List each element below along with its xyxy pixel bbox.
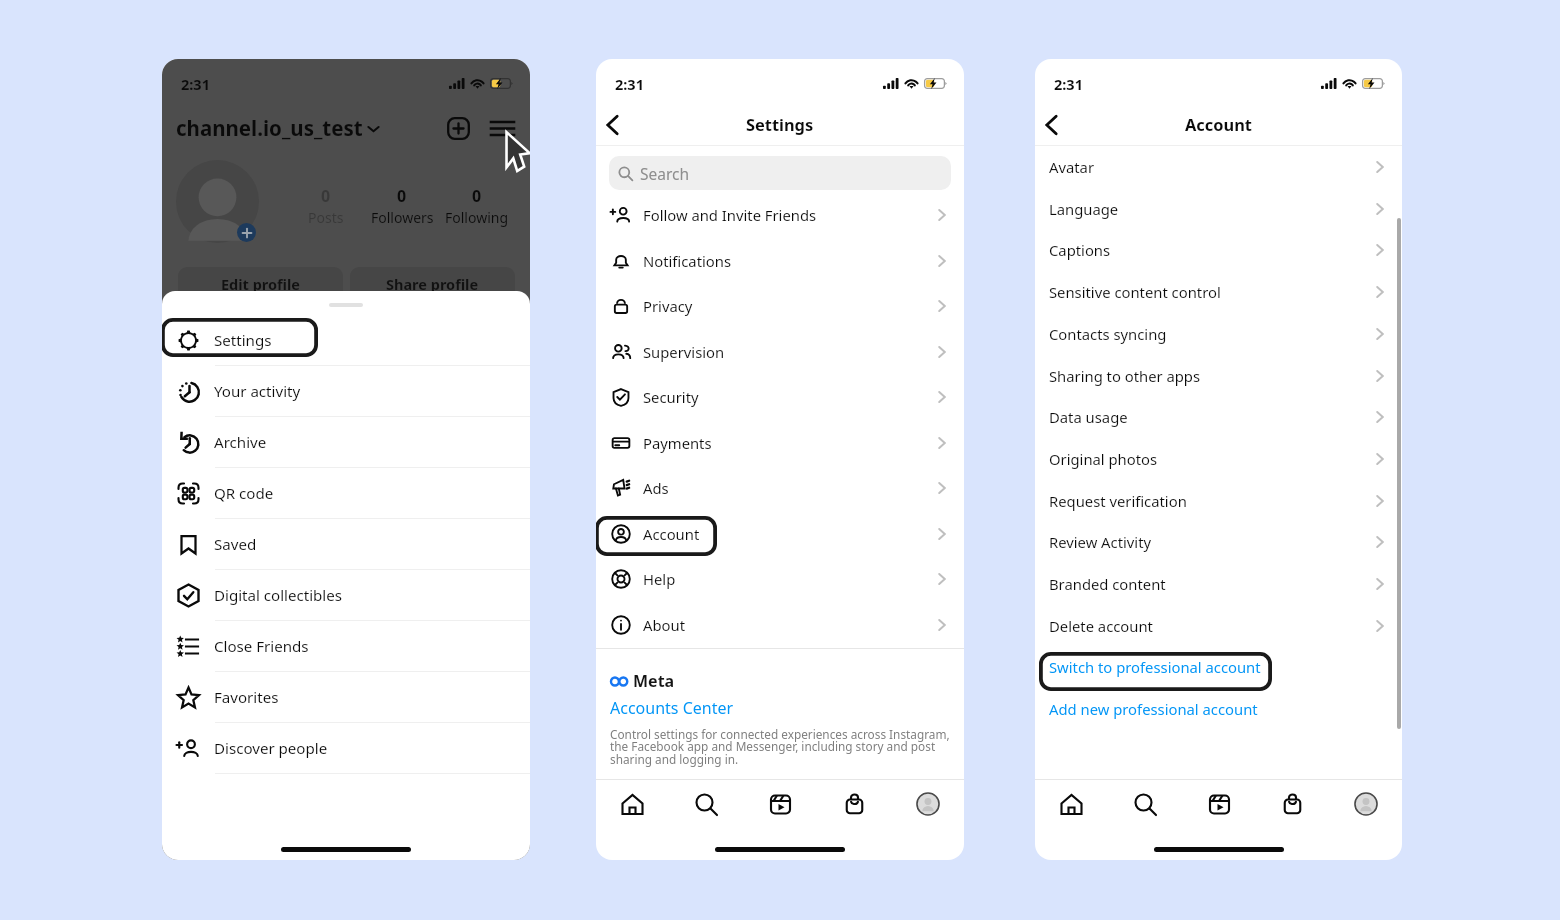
staticText: Edit profile <box>221 274 301 294</box>
staticText: Review Activity <box>1049 532 1152 552</box>
staticText: Request verification <box>1049 491 1187 511</box>
button[interactable]: Search <box>609 156 951 190</box>
staticText: Follow and Invite Friends <box>643 205 817 225</box>
button[interactable]: 0 <box>276 185 376 227</box>
button[interactable]: Branded content <box>1049 563 1388 605</box>
button[interactable]: Supervision <box>610 329 950 375</box>
button[interactable]: About <box>610 602 950 648</box>
button[interactable]: Security <box>610 374 950 420</box>
button[interactable]: Switch to professional account <box>1049 646 1402 688</box>
staticText: Digital collectibles <box>214 585 343 606</box>
staticText: Add new professional account <box>1049 699 1258 719</box>
staticText: Settings <box>214 330 272 351</box>
button[interactable]: QR code <box>162 468 530 519</box>
button[interactable]: Avatar <box>1049 146 1388 188</box>
button[interactable]: Saved <box>162 519 530 570</box>
button[interactable]: Ads <box>610 465 950 511</box>
button[interactable]: Account <box>610 511 950 557</box>
button[interactable]: Search <box>1130 789 1160 819</box>
staticText: Avatar <box>1049 157 1095 177</box>
staticText: channel.io_us_test <box>176 114 363 142</box>
button[interactable]: Back <box>1035 109 1067 141</box>
button[interactable]: Accounts Center <box>596 697 964 719</box>
staticText: Sensitive content control <box>1049 282 1221 302</box>
button[interactable]: Follow and Invite Friends <box>610 192 950 238</box>
button[interactable]: Delete account <box>1049 605 1388 647</box>
button[interactable]: Back <box>596 109 628 141</box>
button[interactable]: New post <box>444 114 472 142</box>
staticText: 0 <box>472 185 482 207</box>
button[interactable]: Shop <box>839 789 869 819</box>
button[interactable]: 0 <box>352 185 452 227</box>
staticText: 2:31 <box>615 74 644 94</box>
staticText: Account <box>643 524 700 544</box>
button[interactable]: Payments <box>610 420 950 466</box>
staticText: Language <box>1049 199 1119 219</box>
button[interactable]: Edit profile <box>178 267 343 300</box>
button[interactable]: Add new professional account <box>1049 688 1402 730</box>
button[interactable]: Captions <box>1049 229 1388 271</box>
button[interactable]: Data usage <box>1049 396 1388 438</box>
staticText: 2:31 <box>181 74 210 94</box>
button[interactable]: Sensitive content control <box>1049 271 1388 313</box>
button[interactable]: Home <box>1056 789 1086 819</box>
button[interactable]: 0 <box>427 185 527 227</box>
staticText: Delete account <box>1049 616 1153 636</box>
staticText: 0 <box>321 185 331 207</box>
staticText: Captions <box>1049 240 1111 260</box>
button[interactable]: Add to story <box>237 223 256 242</box>
staticText: Notifications <box>643 251 732 271</box>
staticText: About <box>643 615 685 635</box>
button[interactable]: Archive <box>162 417 530 468</box>
staticText: Help <box>643 569 676 589</box>
button[interactable]: Digital collectibles <box>162 570 530 621</box>
staticText: Security <box>643 387 699 407</box>
button[interactable]: Review Activity <box>1049 521 1388 563</box>
staticText: Search <box>640 163 690 184</box>
button[interactable]: Privacy <box>610 283 950 329</box>
staticText: QR code <box>214 483 274 504</box>
button[interactable]: Your activity <box>162 366 530 417</box>
staticText: Following <box>445 208 509 227</box>
staticText: Supervision <box>643 342 725 362</box>
staticText: Branded content <box>1049 574 1166 594</box>
staticText: Account <box>1185 113 1252 135</box>
staticText: Privacy <box>643 296 693 316</box>
staticText: Favorites <box>214 687 279 708</box>
staticText: Archive <box>214 432 267 453</box>
button[interactable]: Settings <box>162 315 530 366</box>
staticText: Your activity <box>214 381 301 402</box>
button[interactable]: Request verification <box>1049 480 1388 522</box>
button[interactable]: Original photos <box>1049 438 1388 480</box>
button[interactable]: Sharing to other apps <box>1049 355 1388 397</box>
staticText: Control settings for connected experienc… <box>610 726 952 768</box>
button[interactable]: Reels <box>765 789 795 819</box>
staticText: Discover people <box>214 738 328 759</box>
button[interactable]: Profile <box>1351 789 1381 819</box>
staticText: 2:31 <box>1054 74 1083 94</box>
staticText: Switch to professional account <box>1049 657 1261 677</box>
button[interactable]: Profile <box>913 789 943 819</box>
button[interactable]: Discover people <box>162 723 530 774</box>
staticText: Meta <box>633 670 675 692</box>
staticText: Close Friends <box>214 636 309 657</box>
staticText: Followers <box>371 208 434 227</box>
staticText: Original photos <box>1049 449 1158 469</box>
button[interactable]: Menu <box>488 114 516 142</box>
button[interactable]: Language <box>1049 188 1388 230</box>
button[interactable]: Contacts syncing <box>1049 313 1388 355</box>
staticText: Saved <box>214 534 257 555</box>
button[interactable]: Close Friends <box>162 621 530 672</box>
button[interactable]: Notifications <box>610 238 950 284</box>
button[interactable]: Reels <box>1204 789 1234 819</box>
button[interactable]: Favorites <box>162 672 530 723</box>
staticText: Ads <box>643 478 669 498</box>
button[interactable]: Search <box>691 789 721 819</box>
staticText: Payments <box>643 433 712 453</box>
staticText: Posts <box>308 208 344 227</box>
button[interactable]: Share profile <box>350 267 515 300</box>
button[interactable]: Help <box>610 556 950 602</box>
button[interactable]: Shop <box>1277 789 1307 819</box>
staticText: Contacts syncing <box>1049 324 1167 344</box>
button[interactable]: Home <box>617 789 647 819</box>
